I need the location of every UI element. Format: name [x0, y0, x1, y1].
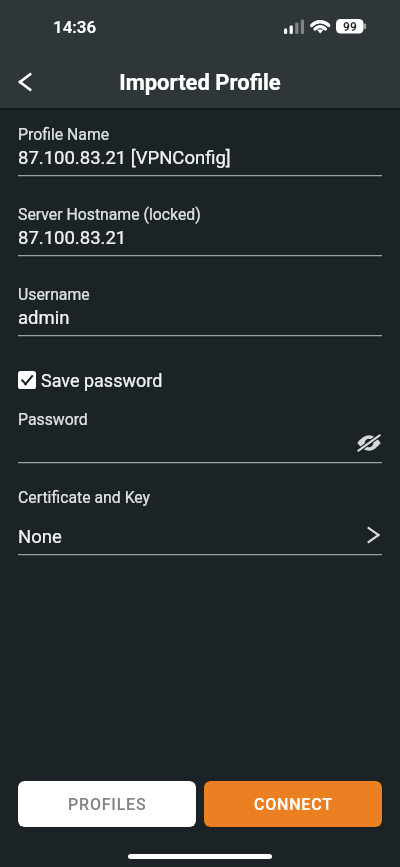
button[interactable]: Back [0, 58, 48, 106]
staticText: Profile Name [18, 125, 110, 144]
staticText: Save password [41, 370, 163, 391]
button[interactable]: Save password [18, 368, 163, 392]
staticText: None [18, 526, 62, 548]
button[interactable]: PROFILES [18, 781, 196, 827]
staticText: Server Hostname (locked) [18, 205, 201, 224]
staticText: 14:36 [53, 17, 97, 37]
staticText: Imported Profile [0, 70, 400, 96]
staticText: 87.100.83.21 [VPNConfig] [18, 147, 231, 169]
staticText: Certificate and Key [18, 488, 151, 507]
button[interactable]: Certificate and Key [18, 488, 382, 556]
staticText: PROFILES [68, 795, 147, 814]
button[interactable]: CONNECT [204, 781, 382, 827]
staticText: 99 [340, 20, 360, 34]
staticText: Username [18, 285, 90, 304]
staticText: CONNECT [254, 795, 333, 814]
staticText: Password [18, 410, 88, 429]
staticText: 87.100.83.21 [18, 227, 127, 249]
staticText: admin [18, 307, 70, 329]
button[interactable]: Show password [350, 428, 388, 458]
